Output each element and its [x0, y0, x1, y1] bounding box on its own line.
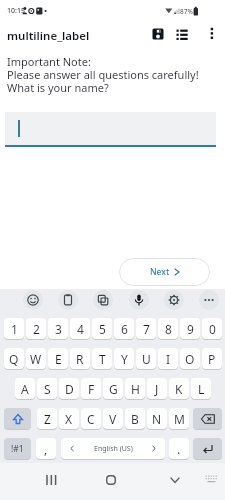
button[interactable]: N	[147, 408, 167, 429]
staticText: J	[155, 381, 159, 397]
button[interactable]	[100, 469, 122, 491]
staticText: 7	[143, 321, 150, 337]
button[interactable]: U	[136, 348, 156, 369]
staticText: U	[142, 351, 151, 367]
staticText: X	[65, 411, 73, 427]
button[interactable]: J	[147, 378, 167, 399]
staticText: 87%	[180, 7, 193, 16]
button[interactable]: 0	[202, 318, 222, 339]
staticText: I	[166, 351, 171, 367]
button[interactable]	[164, 469, 186, 491]
staticText: S	[44, 381, 51, 397]
button[interactable]: 3	[48, 318, 68, 339]
button[interactable]: X	[59, 408, 79, 429]
button[interactable]: R	[70, 348, 90, 369]
button[interactable]	[129, 290, 149, 310]
staticText: Please answer all questions carefully!	[7, 67, 199, 82]
button[interactable]: S	[37, 378, 57, 399]
staticText: !#1	[11, 443, 24, 455]
staticText: .	[177, 441, 181, 457]
staticText: O	[185, 351, 195, 367]
staticText: K	[175, 381, 183, 397]
button[interactable]: D	[59, 378, 79, 399]
staticText: 3	[55, 321, 62, 337]
staticText: H	[131, 381, 140, 397]
button[interactable]	[193, 438, 222, 459]
button[interactable]: L	[191, 378, 211, 399]
button[interactable]: 8	[158, 318, 178, 339]
button[interactable]: 6	[114, 318, 134, 339]
button[interactable]: Y	[114, 348, 134, 369]
button[interactable]	[205, 26, 219, 42]
staticText: Next	[150, 266, 170, 278]
button[interactable]	[164, 290, 184, 310]
button[interactable]: B	[125, 408, 145, 429]
button[interactable]	[202, 471, 220, 487]
button[interactable]: 9	[180, 318, 200, 339]
staticText: N	[152, 411, 162, 427]
button[interactable]: 7	[136, 318, 156, 339]
button[interactable]: !#1	[4, 438, 31, 459]
staticText: G	[109, 381, 118, 397]
button[interactable]: .	[169, 438, 189, 459]
button[interactable]: C	[81, 408, 101, 429]
staticText: Y	[121, 351, 128, 367]
button[interactable]	[58, 290, 78, 310]
button[interactable]: H	[125, 378, 145, 399]
button[interactable]: English (US)	[61, 438, 165, 459]
staticText: C	[87, 411, 95, 427]
staticText: 9	[187, 321, 194, 337]
button[interactable]	[150, 26, 166, 42]
button[interactable]	[4, 408, 31, 429]
button[interactable]	[23, 290, 43, 310]
button[interactable]	[199, 290, 219, 310]
staticText: P	[208, 351, 216, 367]
staticText: A	[21, 381, 29, 397]
staticText: Q	[9, 351, 19, 367]
button[interactable]: F	[81, 378, 101, 399]
staticText: 10:15	[7, 6, 25, 16]
staticText: V	[109, 411, 117, 427]
button[interactable]: ,	[36, 438, 56, 459]
staticText: 1	[11, 321, 18, 337]
staticText: 2	[33, 321, 40, 337]
button[interactable]: 5	[92, 318, 112, 339]
button[interactable]: T	[92, 348, 112, 369]
staticText: E	[55, 351, 62, 367]
staticText: W	[30, 351, 42, 367]
button[interactable]: E	[48, 348, 68, 369]
staticText: Important Note:	[7, 54, 91, 69]
staticText: multiline_label	[7, 28, 90, 44]
button[interactable]: G	[103, 378, 123, 399]
staticText: R	[76, 351, 84, 367]
button[interactable]: I	[158, 348, 178, 369]
staticText: M	[174, 411, 185, 427]
button[interactable]: Next	[119, 258, 210, 286]
button[interactable]: W	[26, 348, 46, 369]
staticText: 0	[209, 321, 216, 337]
button[interactable]	[40, 469, 62, 491]
button[interactable]: 4	[70, 318, 90, 339]
button[interactable]	[193, 408, 222, 429]
button[interactable]: V	[103, 408, 123, 429]
button[interactable]: Z	[37, 408, 57, 429]
button[interactable]: Q	[4, 348, 24, 369]
staticText: Z	[44, 411, 51, 427]
button[interactable]: 1	[4, 318, 24, 339]
staticText: English (US)	[94, 444, 133, 454]
button[interactable]: K	[169, 378, 189, 399]
staticText: 8	[165, 321, 172, 337]
staticText: B	[131, 411, 139, 427]
button[interactable]	[174, 26, 190, 42]
staticText: 4	[77, 321, 84, 337]
staticText: 5	[99, 321, 106, 337]
button[interactable]: 2	[26, 318, 46, 339]
button[interactable]: P	[202, 348, 222, 369]
button[interactable]	[93, 290, 113, 310]
button[interactable]: M	[169, 408, 189, 429]
staticText: F	[88, 381, 95, 397]
button[interactable]: O	[180, 348, 200, 369]
button[interactable]: A	[15, 378, 35, 399]
staticText: L	[198, 381, 205, 397]
staticText: What is your name?	[7, 80, 109, 95]
